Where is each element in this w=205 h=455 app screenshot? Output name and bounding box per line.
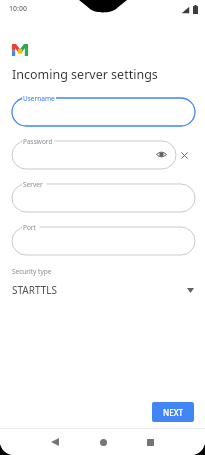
button[interactable]: Recent apps [139, 431, 161, 453]
staticText: Password [23, 137, 53, 146]
button[interactable]: Home [92, 431, 114, 453]
staticText: Port [23, 223, 36, 232]
staticText: Server [23, 180, 43, 189]
button[interactable]: Server [12, 179, 195, 212]
button[interactable]: Password [12, 136, 176, 169]
staticText: NEXT [163, 407, 184, 418]
button[interactable]: Clear password [176, 147, 192, 163]
button[interactable]: Security type [0, 266, 205, 300]
staticText: 10:00 [9, 4, 27, 14]
button[interactable]: NEXT [152, 402, 194, 422]
staticText: Security type [12, 267, 52, 276]
staticText: STARTTLS [12, 283, 58, 297]
staticText: Incoming server settings [12, 66, 158, 83]
button[interactable]: Username [12, 93, 195, 126]
staticText: Username [23, 94, 55, 103]
button[interactable]: Back [44, 431, 66, 453]
button[interactable]: Show password [154, 147, 169, 162]
button[interactable]: Port [12, 222, 195, 255]
